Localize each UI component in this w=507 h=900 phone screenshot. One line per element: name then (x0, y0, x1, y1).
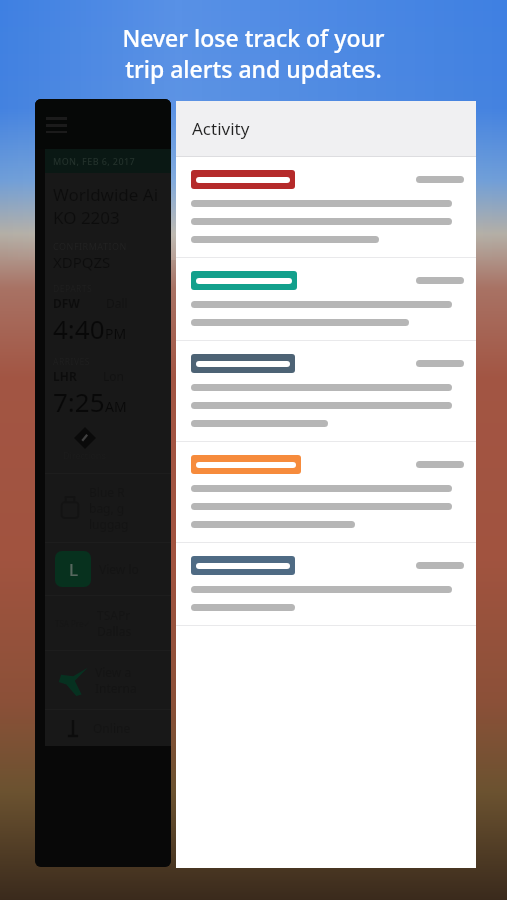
button[interactable]: Menu (46, 117, 67, 133)
staticText: MON, FEB 6, 2017 (53, 155, 136, 167)
button[interactable]: Directions (63, 427, 106, 461)
staticText: 4:40 (53, 311, 105, 346)
staticText: LHR (53, 368, 77, 384)
staticText: L (69, 558, 78, 581)
staticText: Activity (192, 117, 250, 140)
staticText: AM (105, 397, 127, 416)
button[interactable] (176, 157, 476, 257)
button[interactable]: View a (45, 651, 171, 709)
staticText: DFW (53, 295, 80, 311)
staticText: XDPQZS (53, 252, 111, 272)
button[interactable] (176, 543, 476, 625)
staticText: PM (105, 324, 127, 343)
button[interactable] (176, 258, 476, 340)
button[interactable]: L (45, 543, 171, 595)
staticText: trip alerts and updates. (125, 53, 382, 84)
staticText: 7:25 (53, 384, 105, 419)
button[interactable] (176, 341, 476, 441)
button[interactable] (176, 442, 476, 542)
staticText: Worldwide Ai (53, 183, 159, 206)
staticText: KO 2203 (53, 206, 120, 229)
staticText: Never lose track of your (122, 22, 385, 53)
